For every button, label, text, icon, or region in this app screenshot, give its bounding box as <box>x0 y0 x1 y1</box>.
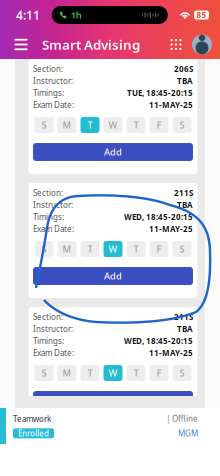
button[interactable]: S <box>172 365 191 381</box>
button[interactable]: F <box>149 365 168 381</box>
staticText: M <box>62 119 71 131</box>
staticText: S <box>179 367 184 379</box>
button[interactable]: M <box>57 241 76 257</box>
staticText: TBA <box>177 200 193 210</box>
staticText: Timings: <box>33 88 64 98</box>
button[interactable]: W <box>103 241 122 257</box>
staticText: TBA <box>177 324 193 334</box>
button[interactable]: T <box>126 241 145 257</box>
button[interactable]: S <box>172 241 191 257</box>
staticText: 11-MAY-25 <box>149 348 193 358</box>
button[interactable]: App grid <box>164 30 188 59</box>
button[interactable]: F <box>149 117 168 133</box>
button[interactable]: Add <box>33 391 193 409</box>
staticText: 11-MAY-25 <box>149 224 193 234</box>
staticText: Timings: <box>33 336 64 346</box>
button[interactable]: S <box>34 241 53 257</box>
staticText: TUE, 18:45-20:15 <box>127 88 193 98</box>
button[interactable]: S <box>34 365 53 381</box>
staticText: T <box>87 367 92 379</box>
button[interactable]: Teamwork <box>0 408 220 444</box>
staticText: 206S <box>174 64 193 74</box>
button[interactable]: T <box>80 365 99 381</box>
staticText: Add <box>104 146 122 158</box>
staticText: 4:11 <box>16 7 40 23</box>
button[interactable]: F <box>149 241 168 257</box>
staticText: T <box>87 243 92 255</box>
staticText: S <box>179 243 184 255</box>
button[interactable]: S <box>34 117 53 133</box>
staticText: W <box>108 367 117 379</box>
staticText: T <box>87 119 92 131</box>
staticText: F <box>156 367 161 379</box>
staticText: M <box>62 243 71 255</box>
button[interactable]: W <box>103 117 122 133</box>
staticText: Section: <box>33 312 63 322</box>
staticText: Section: <box>33 64 63 74</box>
staticText: Timings: <box>33 212 64 222</box>
staticText: 211S <box>174 188 193 198</box>
button[interactable]: Profile <box>188 30 216 59</box>
button[interactable]: M <box>57 117 76 133</box>
button[interactable]: W <box>103 365 122 381</box>
button[interactable]: T <box>80 117 99 133</box>
staticText: Smart Advising <box>42 36 140 53</box>
staticText: Enrolled <box>18 428 49 439</box>
staticText: Exam Date: <box>33 224 74 234</box>
staticText: T <box>133 243 138 255</box>
button[interactable]: Add <box>33 267 193 285</box>
staticText: T <box>133 119 138 131</box>
staticText: 11-MAY-25 <box>149 100 193 110</box>
staticText: 211S <box>174 312 193 322</box>
staticText: | Offline <box>166 413 198 424</box>
staticText: S <box>41 367 46 379</box>
staticText: WED, 18:45-20:15 <box>124 336 193 346</box>
staticText: TBA <box>177 76 193 86</box>
staticText: S <box>179 119 184 131</box>
button[interactable]: T <box>126 365 145 381</box>
staticText: W <box>108 243 117 255</box>
button[interactable]: M <box>57 365 76 381</box>
staticText: W <box>108 119 117 131</box>
staticText: F <box>156 243 161 255</box>
staticText: M <box>62 367 71 379</box>
button[interactable]: Menu <box>8 30 34 59</box>
staticText: Teamwork <box>13 414 51 424</box>
staticText: S <box>41 243 46 255</box>
staticText: WED, 18:45-20:15 <box>124 212 193 222</box>
staticText: Exam Date: <box>33 348 74 358</box>
staticText: Exam Date: <box>33 100 74 110</box>
button[interactable]: T <box>126 117 145 133</box>
staticText: Instructor: <box>33 200 73 210</box>
staticText: Instructor: <box>33 76 73 86</box>
staticText: F <box>156 119 161 131</box>
staticText: Add <box>104 270 122 282</box>
staticText: 85 <box>196 10 206 20</box>
button[interactable]: Add <box>33 143 193 161</box>
staticText: 1h <box>71 9 82 21</box>
staticText: S <box>41 119 46 131</box>
button[interactable]: S <box>172 117 191 133</box>
staticText: MGM <box>178 428 198 439</box>
button[interactable]: T <box>80 241 99 257</box>
staticText: T <box>133 367 138 379</box>
staticText: Section: <box>33 188 63 198</box>
staticText: Instructor: <box>33 324 73 334</box>
staticText: Add <box>104 394 122 406</box>
